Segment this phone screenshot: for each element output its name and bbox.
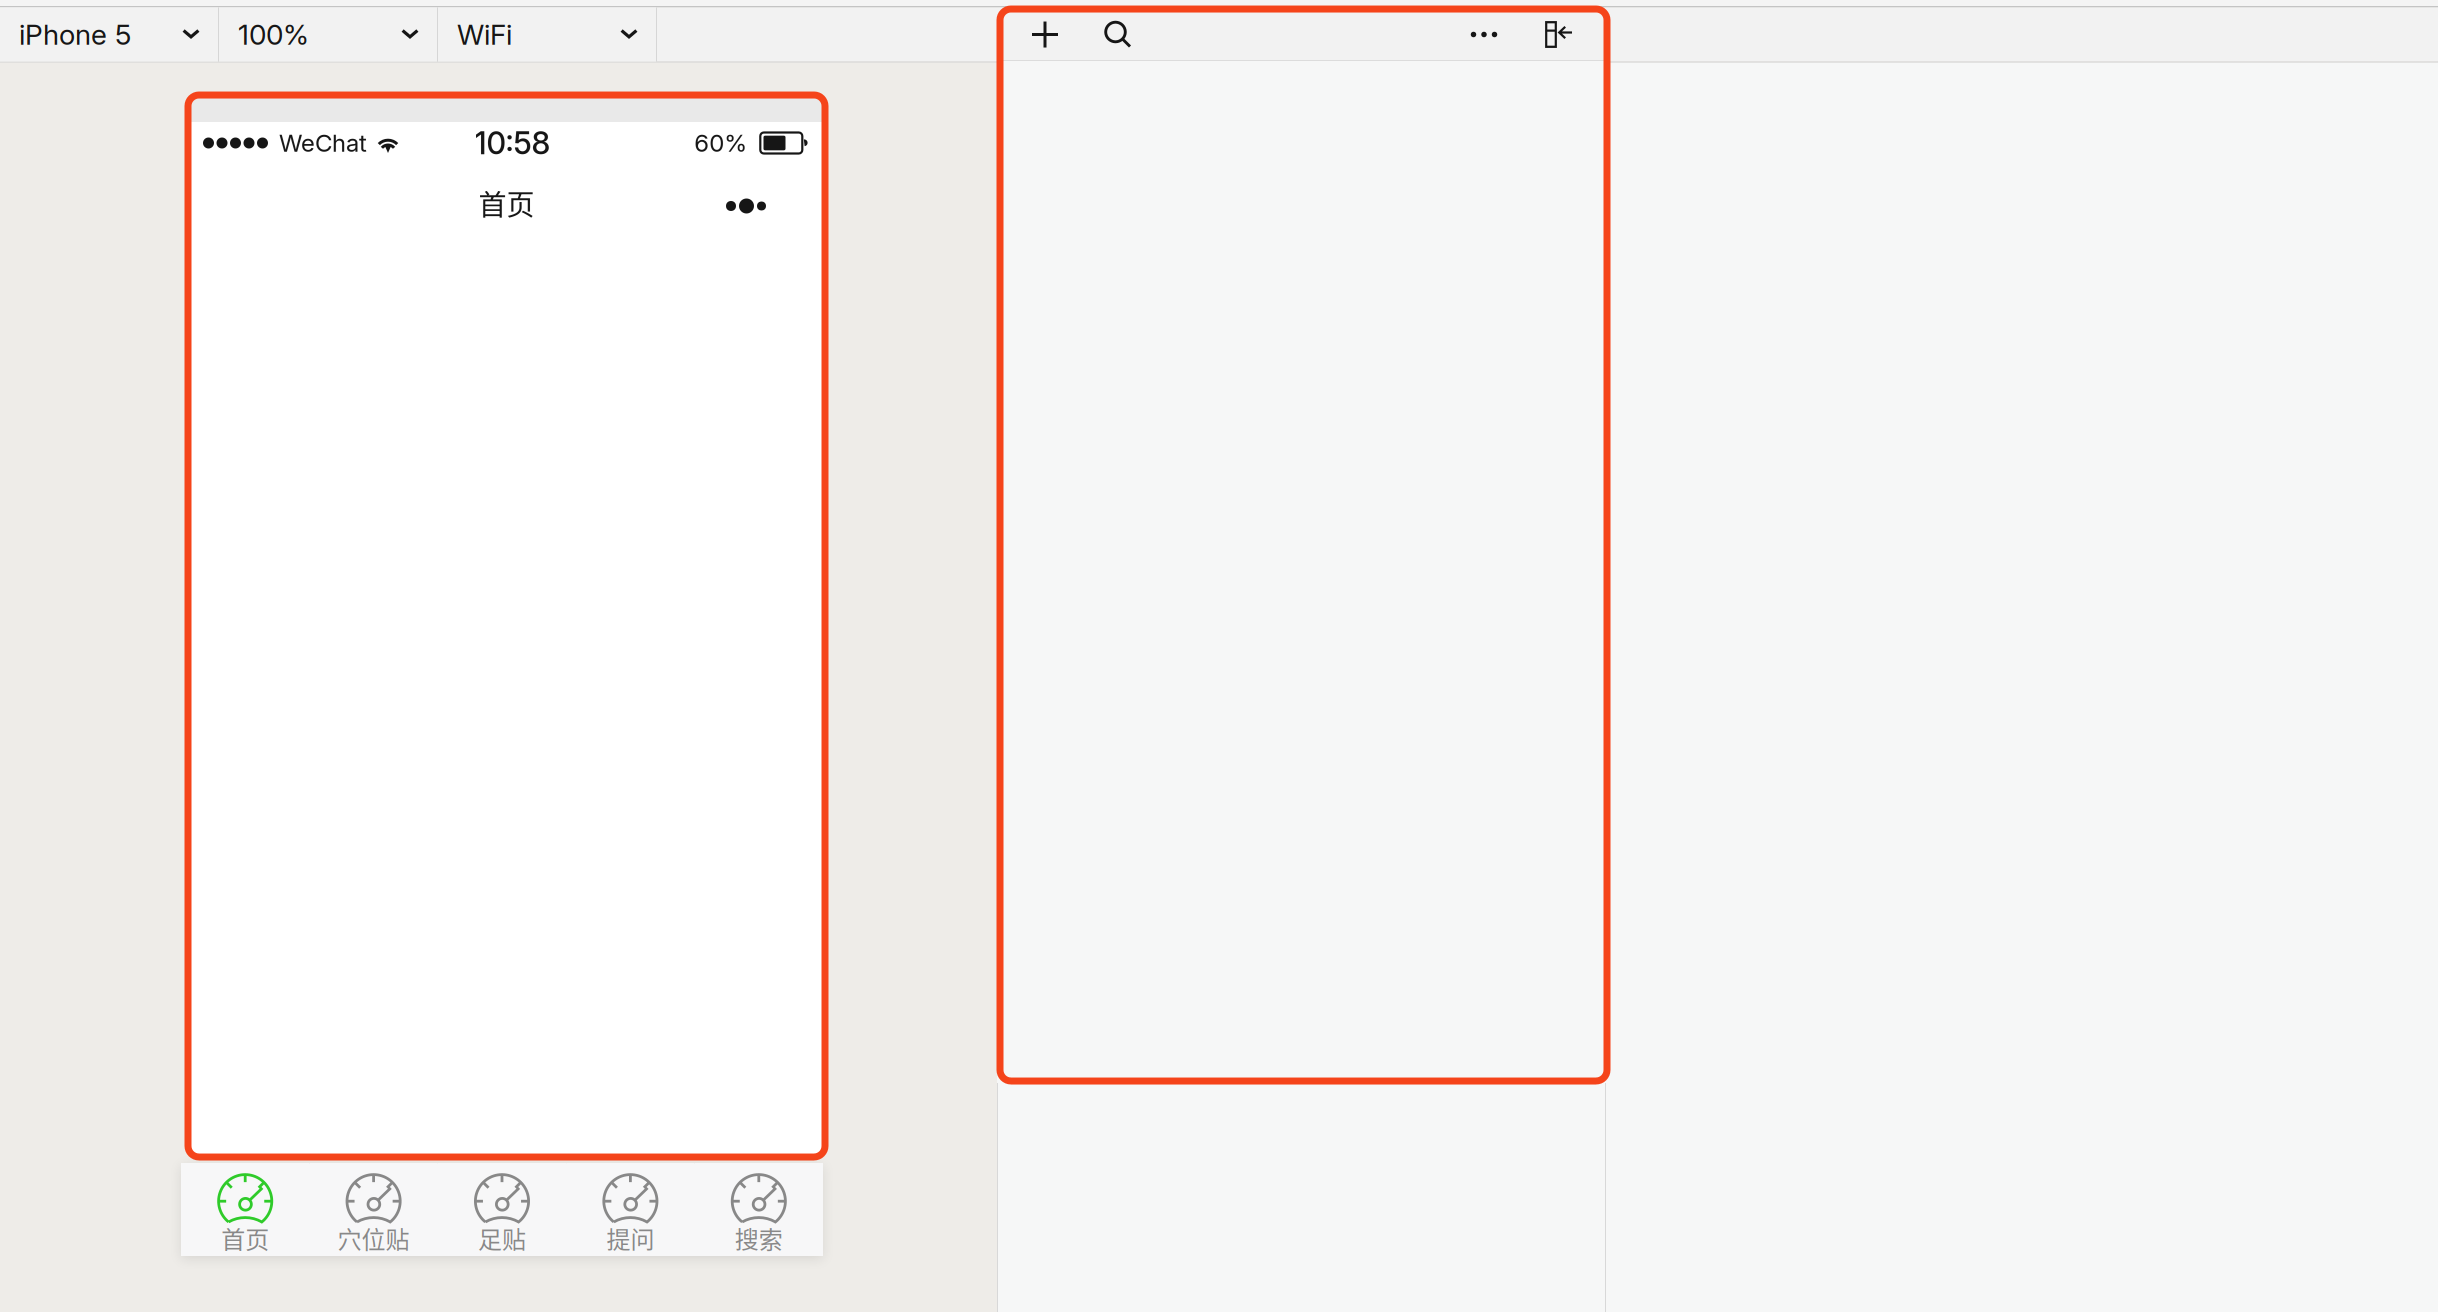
button[interactable]: 穴位贴 (309, 1163, 438, 1256)
button[interactable]: 足贴 (438, 1163, 566, 1256)
staticText: WiFi (457, 18, 512, 51)
staticText: WeChat (279, 128, 367, 157)
staticText: 10:58 (474, 124, 550, 161)
staticText: 100% (238, 18, 309, 51)
button[interactable]: 搜索 (695, 1163, 823, 1256)
button[interactable]: iPhone 5 (0, 7, 218, 61)
staticText: 首页 (478, 183, 534, 223)
button[interactable]: WiFi (438, 7, 656, 61)
staticText: 搜索 (735, 1221, 783, 1255)
staticText: 提问 (606, 1221, 654, 1255)
staticText: iPhone 5 (19, 18, 131, 51)
button[interactable]: More (716, 164, 800, 226)
staticText: 足贴 (478, 1221, 526, 1255)
button[interactable]: More options (1452, 9, 1516, 60)
staticText: 60% (694, 128, 747, 157)
staticText: 穴位贴 (338, 1221, 410, 1255)
button[interactable]: Search (1086, 9, 1150, 60)
button[interactable]: 首页 (181, 1163, 309, 1256)
button[interactable]: Collapse panel (1527, 9, 1591, 60)
staticText: 首页 (221, 1221, 269, 1255)
button[interactable]: 提问 (566, 1163, 695, 1256)
button[interactable]: New file (1013, 9, 1077, 60)
button[interactable]: 100% (219, 7, 437, 61)
